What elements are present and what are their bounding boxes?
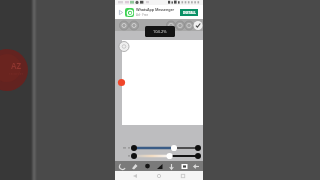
button[interactable]: Brush: [163, 21, 172, 30]
button[interactable]: INSTALL: [180, 9, 198, 16]
staticText: 104.2%: [153, 29, 167, 34]
button[interactable]: nav1: [155, 172, 163, 180]
button[interactable]: tool6: [192, 162, 200, 170]
button[interactable]: tool0: [118, 162, 126, 170]
button[interactable]: tool4: [167, 162, 175, 170]
button[interactable]: Undo: [119, 21, 128, 30]
button[interactable]: Opacity slider: [134, 152, 198, 160]
button[interactable]: tool3: [155, 162, 163, 170]
staticText: Ad · Free: [136, 13, 149, 17]
button[interactable]: Color: [172, 21, 181, 30]
staticText: INSTALL: [183, 11, 196, 15]
button[interactable]: nav2: [179, 172, 187, 180]
button[interactable]: Brush size slider: [134, 144, 198, 152]
button[interactable]: Settings: [181, 21, 190, 30]
button[interactable]: Done: [190, 21, 199, 30]
button[interactable]: Resize handle: [119, 42, 129, 52]
staticText: recorder: [9, 71, 24, 76]
button[interactable]: nav0: [131, 172, 139, 180]
staticText: WhatsApp Messenger: [136, 7, 175, 12]
button[interactable]: Redo: [129, 21, 138, 30]
button[interactable]: tool1: [130, 162, 138, 170]
button[interactable]: tool5: [180, 162, 188, 170]
staticText: AZ: [11, 60, 22, 71]
button[interactable]: tool2: [143, 162, 151, 170]
